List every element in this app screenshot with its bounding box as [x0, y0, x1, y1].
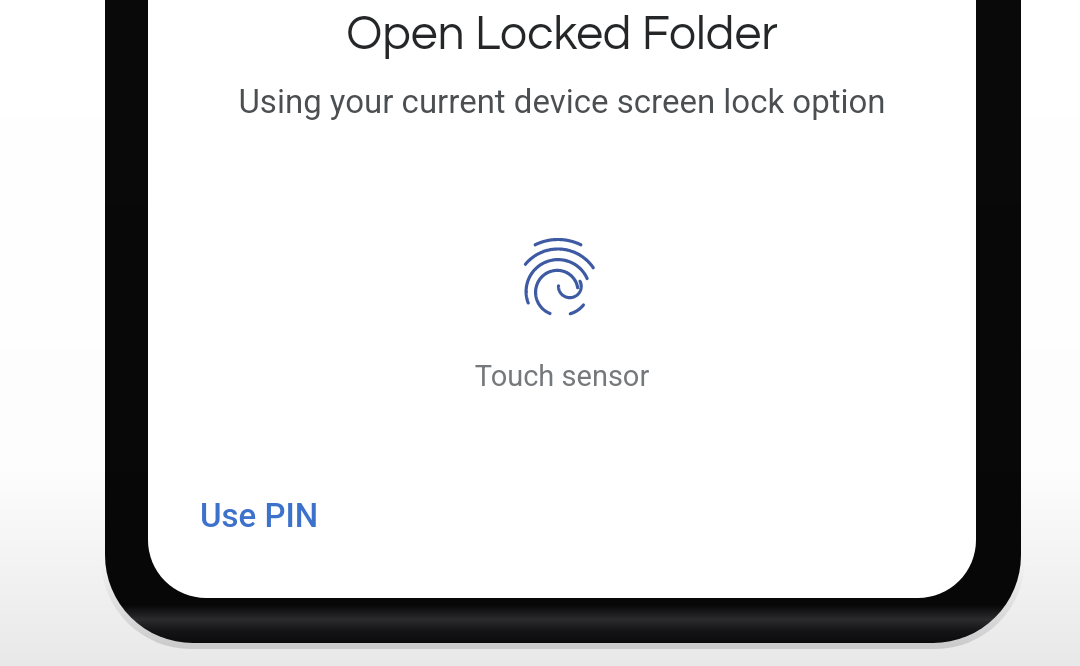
- button[interactable]: Use PIN: [192, 489, 327, 542]
- staticText: Open Locked Folder: [148, 10, 976, 666]
- staticText: Touch sensor: [148, 359, 976, 666]
- staticText: Use PIN: [200, 496, 319, 535]
- staticText: Using your current device screen lock op…: [148, 82, 976, 666]
